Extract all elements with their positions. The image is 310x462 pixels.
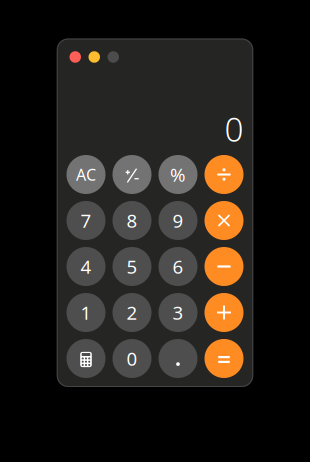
- button[interactable]: 2: [112, 293, 151, 332]
- button[interactable]: Calculator: [66, 339, 105, 378]
- staticText: 7: [80, 208, 91, 233]
- button[interactable]: 0: [112, 339, 151, 378]
- staticText: 0: [224, 107, 243, 151]
- button[interactable]: Zoom: [107, 51, 119, 63]
- button[interactable]: Close: [69, 51, 81, 63]
- staticText: 2: [126, 300, 137, 325]
- button[interactable]: Decimal point: [158, 339, 197, 378]
- button[interactable]: 1: [66, 293, 105, 332]
- button[interactable]: Plus minus: [112, 155, 151, 194]
- button[interactable]: Equals: [204, 339, 243, 378]
- button[interactable]: 7: [66, 201, 105, 240]
- button[interactable]: AC: [66, 155, 105, 194]
- staticText: AC: [76, 164, 96, 185]
- button[interactable]: 5: [112, 247, 151, 286]
- staticText: %: [170, 162, 186, 187]
- button[interactable]: 8: [112, 201, 151, 240]
- staticText: 4: [80, 254, 91, 279]
- button[interactable]: Add: [204, 293, 243, 332]
- staticText: 8: [126, 208, 137, 233]
- button[interactable]: 6: [158, 247, 197, 286]
- button[interactable]: %: [158, 155, 197, 194]
- staticText: 3: [172, 300, 183, 325]
- button[interactable]: 3: [158, 293, 197, 332]
- button[interactable]: 4: [66, 247, 105, 286]
- button[interactable]: Minimize: [88, 51, 100, 63]
- staticText: 6: [172, 254, 183, 279]
- button[interactable]: 9: [158, 201, 197, 240]
- button[interactable]: Multiply: [204, 201, 243, 240]
- staticText: 0: [126, 346, 137, 371]
- staticText: 9: [172, 208, 183, 233]
- staticText: 1: [80, 300, 91, 325]
- staticText: 5: [126, 254, 137, 279]
- button[interactable]: Divide: [204, 155, 243, 194]
- button[interactable]: Subtract: [204, 247, 243, 286]
